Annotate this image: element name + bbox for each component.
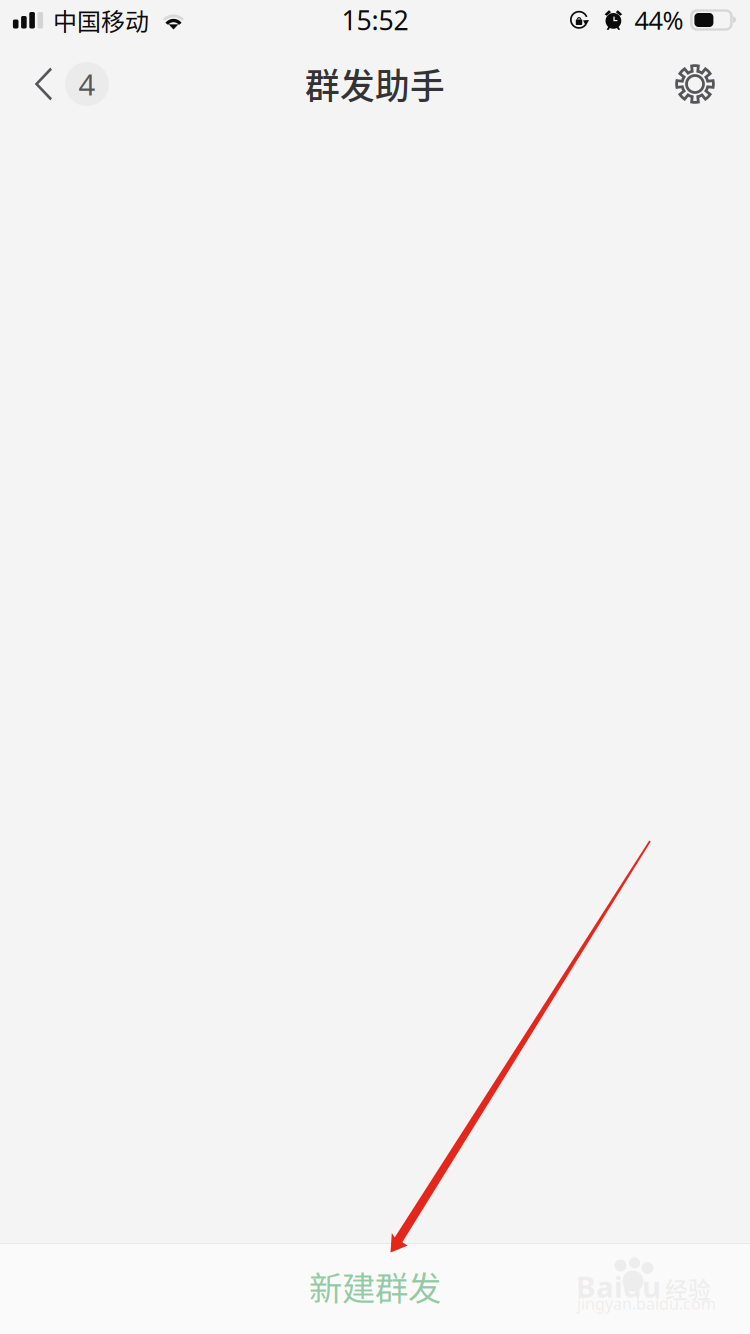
staticText: 群发助手 [305,59,445,109]
button[interactable]: Settings [654,40,750,128]
staticText: Baidu [576,1267,661,1306]
staticText: 4 [78,64,95,103]
button[interactable]: Back, 4 unread [0,40,125,128]
button[interactable]: 新建群发 [0,1244,750,1334]
staticText: 中国移动 [53,3,149,37]
staticText: jingyan.baidu.com [577,1293,716,1314]
staticText: 新建群发 [309,1262,441,1310]
staticText: 经验 [665,1272,711,1305]
staticText: 15:52 [341,2,408,38]
staticText: 44% [634,3,683,37]
